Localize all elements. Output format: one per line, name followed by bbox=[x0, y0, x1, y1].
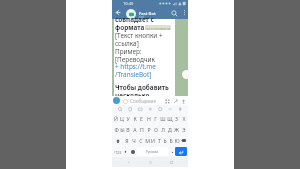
staticText: Х bbox=[182, 115, 186, 122]
button[interactable]: Attachment menu bbox=[113, 97, 120, 104]
staticText: Э bbox=[182, 126, 186, 133]
staticText: М bbox=[145, 137, 150, 144]
button[interactable]: Home bbox=[146, 158, 155, 167]
staticText: Ж bbox=[174, 126, 179, 133]
staticText: Русский bbox=[146, 150, 159, 154]
staticText: Чтобы добавить bbox=[115, 83, 169, 92]
staticText: У bbox=[126, 115, 130, 122]
staticText: Т bbox=[158, 137, 161, 144]
staticText: Я bbox=[125, 137, 129, 144]
staticText: :кнопка bbox=[145, 25, 171, 30]
button[interactable]: Shift bbox=[113, 135, 123, 146]
staticText: ?123 bbox=[114, 150, 122, 154]
button[interactable]: Л bbox=[159, 124, 166, 135]
button[interactable]: More options bbox=[180, 8, 189, 17]
staticText: 10:40 bbox=[123, 1, 134, 6]
button[interactable]: GIF bbox=[137, 106, 143, 112]
button[interactable]: Ц bbox=[119, 113, 125, 124]
button[interactable]: Back bbox=[124, 158, 133, 167]
button[interactable]: Voice message bbox=[179, 97, 187, 105]
staticText: Е bbox=[140, 115, 143, 122]
button[interactable]: Recents bbox=[167, 158, 176, 167]
staticText: Й bbox=[114, 115, 118, 122]
staticText: bot bbox=[139, 15, 145, 19]
staticText: Д bbox=[168, 126, 172, 133]
button[interactable]: Ж bbox=[173, 124, 180, 135]
button[interactable]: Т bbox=[156, 135, 162, 146]
staticText: Б bbox=[169, 137, 173, 144]
button[interactable]: Search bbox=[169, 8, 179, 18]
staticText: Р bbox=[147, 126, 151, 133]
button[interactable]: П bbox=[138, 124, 145, 135]
staticText: Г bbox=[154, 115, 157, 122]
button[interactable]: Backspace bbox=[180, 135, 187, 146]
button[interactable]: З bbox=[173, 113, 180, 124]
button[interactable]: Н bbox=[145, 113, 152, 124]
staticText: несколько bbox=[115, 91, 150, 100]
button[interactable]: Я bbox=[123, 135, 130, 146]
button[interactable]: И bbox=[150, 135, 156, 146]
button[interactable]: Ю bbox=[174, 135, 180, 146]
button[interactable]: Symbols bbox=[113, 146, 122, 157]
staticText: ссылка] bbox=[115, 39, 139, 48]
button[interactable]: К bbox=[131, 113, 138, 124]
staticText: [Текст кнопки + bbox=[115, 31, 163, 40]
button[interactable]: С bbox=[137, 135, 144, 146]
staticText: Щ bbox=[167, 115, 173, 122]
button[interactable]: Stickers bbox=[163, 97, 171, 105]
staticText: Л bbox=[161, 126, 165, 133]
button[interactable]: Г bbox=[152, 113, 159, 124]
staticText: Ь bbox=[163, 137, 167, 144]
staticText: К bbox=[133, 115, 137, 122]
staticText: Ы bbox=[120, 126, 125, 133]
staticText: Ю bbox=[174, 137, 180, 144]
staticText: О bbox=[154, 126, 158, 133]
button[interactable]: Settings bbox=[177, 106, 183, 112]
button[interactable]: Э bbox=[180, 124, 187, 135]
button[interactable]: Translate bbox=[147, 106, 153, 112]
button[interactable]: Русский bbox=[137, 147, 168, 156]
button[interactable]: Ь bbox=[162, 135, 168, 146]
staticText: /TransleBot] bbox=[115, 70, 152, 79]
button[interactable]: Щ bbox=[166, 113, 173, 124]
button[interactable]: Б bbox=[168, 135, 174, 146]
button[interactable]: В bbox=[125, 124, 131, 135]
button[interactable]: More bbox=[167, 106, 173, 112]
button[interactable]: Comma bbox=[122, 146, 129, 157]
staticText: С bbox=[139, 137, 143, 144]
button[interactable]: Clipboard bbox=[127, 106, 133, 112]
staticText: совпадает с bbox=[115, 15, 154, 24]
staticText: З bbox=[175, 115, 178, 122]
staticText: Ф bbox=[114, 126, 119, 133]
staticText: В bbox=[126, 126, 130, 133]
button[interactable]: Ы bbox=[119, 124, 125, 135]
staticText: Ш bbox=[160, 115, 166, 122]
button[interactable]: Ф bbox=[113, 124, 119, 135]
staticText: П bbox=[140, 126, 144, 133]
button[interactable]: Emoji bbox=[122, 98, 128, 104]
button[interactable]: Theme bbox=[157, 106, 163, 112]
button[interactable]: Е bbox=[138, 113, 145, 124]
staticText: Fast Bot bbox=[139, 10, 156, 16]
button[interactable]: Voice input bbox=[129, 146, 136, 157]
button[interactable]: Period bbox=[169, 146, 175, 157]
button[interactable]: Х bbox=[180, 113, 187, 124]
button[interactable]: О bbox=[152, 124, 159, 135]
button[interactable]: У bbox=[125, 113, 131, 124]
button[interactable]: Ч bbox=[130, 135, 137, 146]
button[interactable]: Search bbox=[117, 106, 123, 112]
button[interactable]: Ш bbox=[159, 113, 166, 124]
button[interactable]: М bbox=[144, 135, 150, 146]
staticText: Ц bbox=[120, 115, 124, 122]
button[interactable]: Enter bbox=[175, 147, 187, 156]
button[interactable]: А bbox=[131, 124, 138, 135]
staticText: [Переводчик bbox=[115, 55, 155, 64]
button[interactable]: Scroll to bottom bbox=[182, 70, 191, 79]
staticText: А bbox=[133, 126, 137, 133]
button[interactable]: Д bbox=[166, 124, 173, 135]
button[interactable]: Attach file bbox=[171, 97, 179, 105]
button[interactable]: Back bbox=[113, 8, 122, 17]
button[interactable]: Й bbox=[113, 113, 119, 124]
button[interactable]: Р bbox=[145, 124, 152, 135]
staticText: + https://t.me bbox=[115, 62, 156, 71]
